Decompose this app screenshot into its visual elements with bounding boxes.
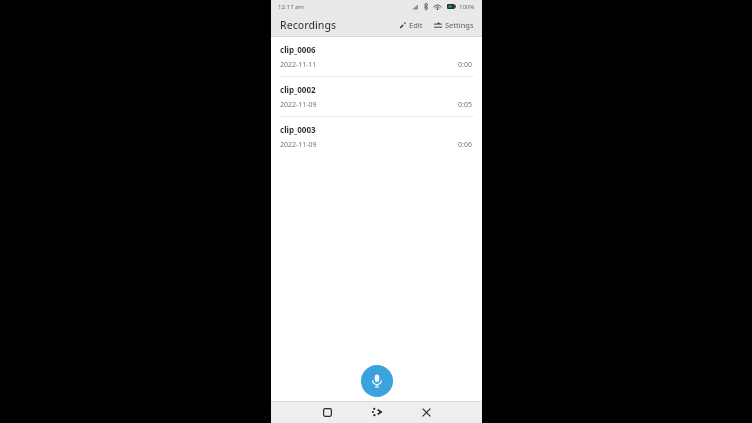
button[interactable] (416, 402, 437, 423)
staticText: clip_0003 (280, 124, 316, 135)
button[interactable]: Edit (397, 16, 425, 34)
button[interactable] (366, 401, 388, 423)
button[interactable]: clip_0002 (271, 77, 482, 116)
staticText: clip_0006 (280, 44, 316, 55)
button[interactable]: Settings (432, 16, 476, 34)
button[interactable]: clip_0003 (271, 117, 482, 156)
staticText: 2022-11-11 (280, 60, 317, 70)
staticText: 0:00 (458, 60, 472, 70)
staticText: clip_0002 (280, 84, 316, 95)
staticText: 0:06 (458, 140, 472, 150)
button[interactable]: clip_0006 (271, 37, 482, 76)
staticText: Settings (445, 20, 474, 30)
staticText: 12:17 am (278, 3, 304, 11)
staticText: Recordings (280, 18, 337, 32)
staticText: 100% (459, 3, 475, 11)
staticText: 2022-11-09 (280, 100, 317, 110)
button[interactable] (361, 365, 393, 397)
button[interactable] (317, 402, 338, 423)
staticText: 2022-11-09 (280, 140, 317, 150)
staticText: Edit (409, 20, 423, 30)
staticText: 0:05 (458, 100, 472, 110)
